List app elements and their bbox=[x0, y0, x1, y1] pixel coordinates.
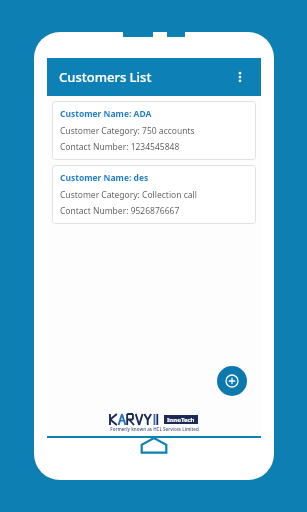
button[interactable]: Customer Name: des bbox=[52, 165, 256, 224]
button[interactable]: More options bbox=[227, 64, 253, 90]
staticText: Customer Category: Collection call bbox=[60, 189, 197, 201]
staticText: Contact Number: 1234545848 bbox=[60, 141, 180, 153]
staticText: InnoTech bbox=[167, 416, 195, 424]
button[interactable]: Customer Name: ADA bbox=[52, 101, 256, 160]
staticText: Contact Number: 9526876667 bbox=[60, 205, 180, 217]
staticText: Customer Name: ADA bbox=[60, 108, 152, 120]
staticText: Customer Category: 750 accounts bbox=[60, 125, 195, 137]
staticText: Customer Name: des bbox=[60, 172, 149, 184]
button[interactable]: Add customer bbox=[217, 366, 247, 396]
button[interactable]: Home bbox=[137, 434, 171, 456]
staticText: Formerly known as HCL Services Limited bbox=[110, 426, 199, 432]
staticText: Customers List bbox=[59, 68, 152, 86]
